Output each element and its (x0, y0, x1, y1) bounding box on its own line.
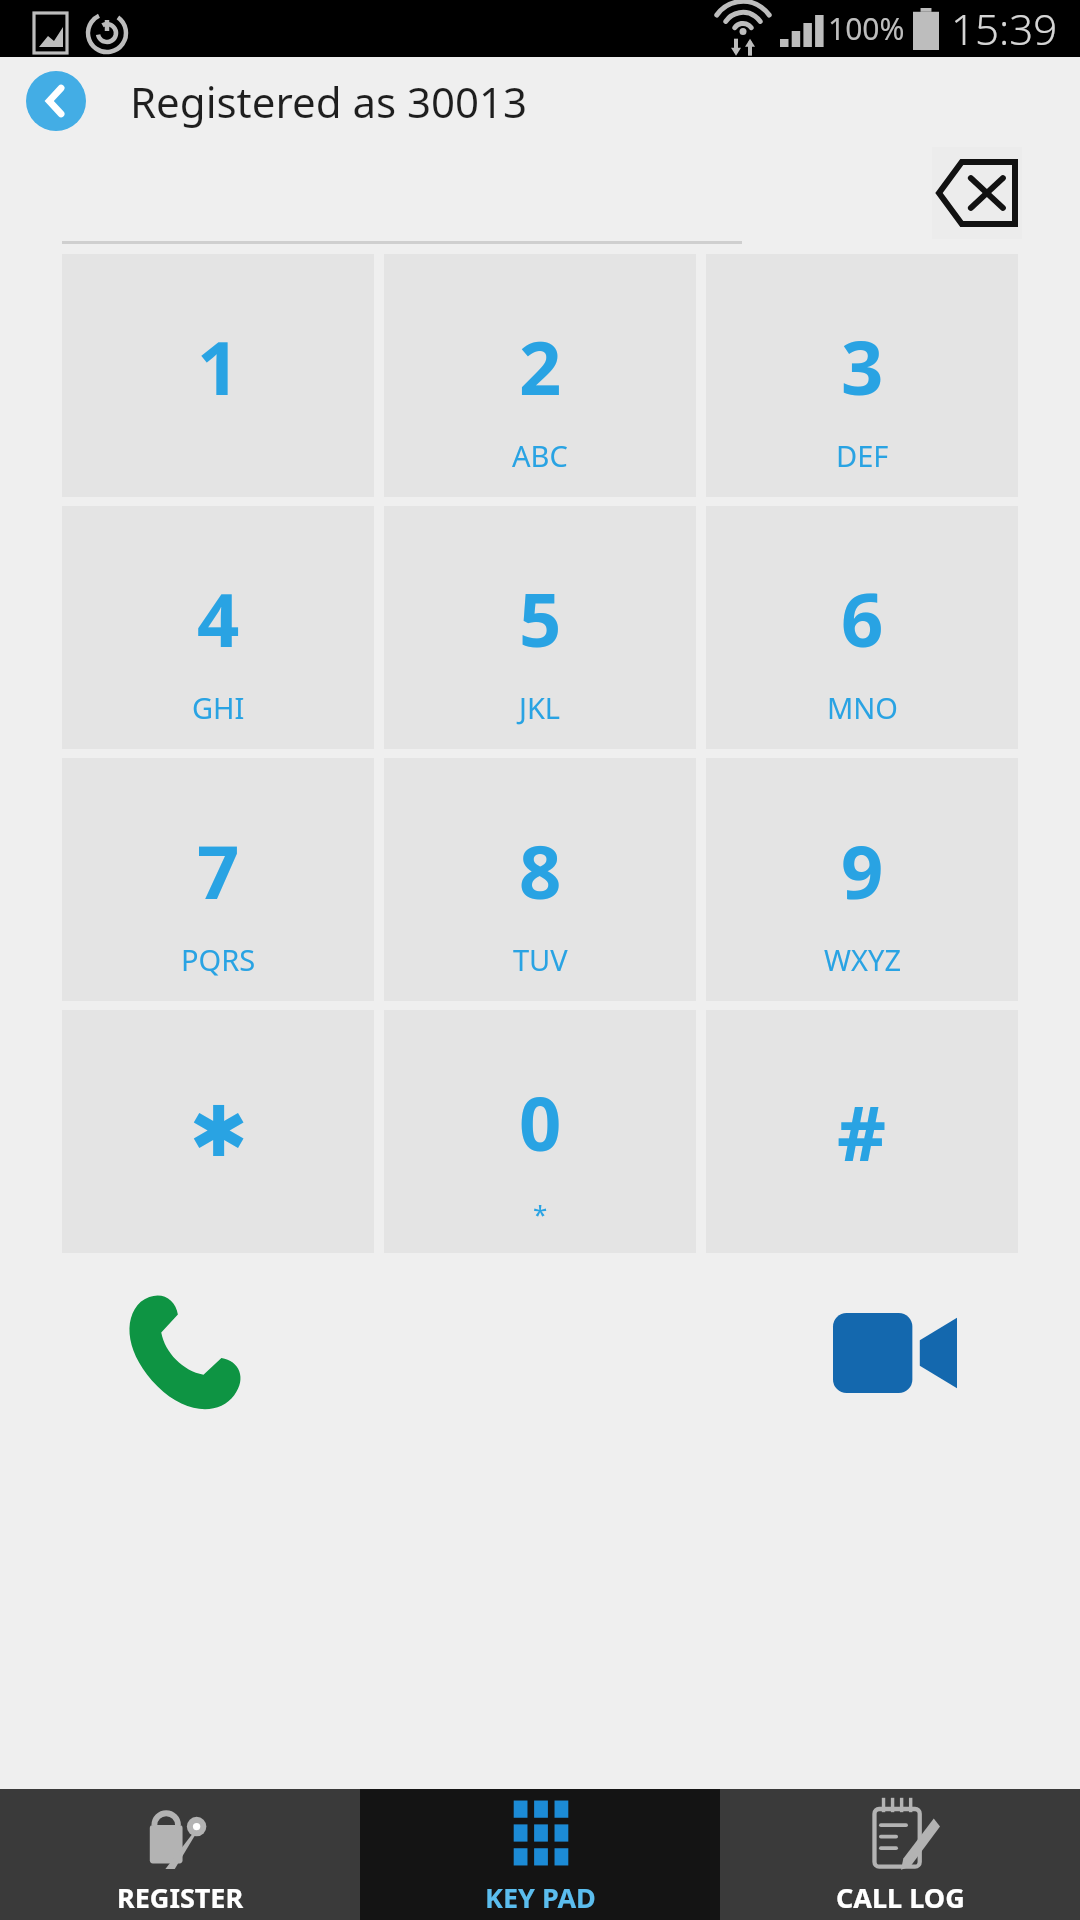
staticText: 2 (519, 316, 562, 417)
staticText: 9 (841, 820, 884, 921)
staticText: KEY PAD (485, 1879, 596, 1916)
button[interactable]: 8 (384, 758, 696, 1001)
button[interactable]: 9 (706, 758, 1018, 1001)
staticText: MNO (827, 688, 898, 727)
button[interactable]: Back (26, 71, 86, 131)
staticText: TUV (513, 940, 568, 979)
staticText: 15:39 (951, 0, 1058, 57)
button[interactable]: KEY PAD (360, 1789, 720, 1920)
staticText: GHI (192, 688, 245, 727)
staticText: PQRS (181, 940, 256, 979)
staticText: 8 (519, 820, 562, 921)
staticText: 100% (828, 8, 905, 49)
staticText: ✱ (189, 1091, 248, 1172)
staticText: ABC (512, 436, 568, 475)
button[interactable]: 5 (384, 506, 696, 749)
button[interactable]: 0 (384, 1010, 696, 1253)
button[interactable]: REGISTER (0, 1789, 360, 1920)
staticText: 5 (519, 568, 562, 669)
staticText: CALL LOG (836, 1879, 965, 1916)
staticText: WXYZ (824, 940, 901, 979)
button[interactable]: ✱ (62, 1010, 374, 1253)
button[interactable]: # (706, 1010, 1018, 1253)
staticText: 3 (841, 316, 884, 417)
button[interactable]: 4 (62, 506, 374, 749)
button[interactable]: CALL LOG (720, 1789, 1080, 1920)
button[interactable]: 3 (706, 254, 1018, 497)
staticText: Registered as 30013 (130, 73, 528, 130)
staticText: 4 (197, 568, 240, 669)
staticText: # (837, 1080, 887, 1184)
staticText: JKL (519, 688, 561, 727)
staticText: * (533, 1196, 548, 1231)
button[interactable]: Backspace (932, 147, 1022, 239)
staticText: 1 (197, 316, 240, 417)
button[interactable]: 6 (706, 506, 1018, 749)
button[interactable]: 2 (384, 254, 696, 497)
staticText: 7 (197, 820, 240, 921)
button[interactable]: Voice call (108, 1278, 258, 1428)
button[interactable]: 1 (62, 254, 374, 497)
staticText: 0 (519, 1072, 562, 1173)
button[interactable]: 7 (62, 758, 374, 1001)
button[interactable]: Video call (820, 1293, 970, 1413)
staticText: 6 (841, 568, 884, 669)
staticText: REGISTER (117, 1879, 244, 1916)
staticText: DEF (836, 436, 889, 475)
